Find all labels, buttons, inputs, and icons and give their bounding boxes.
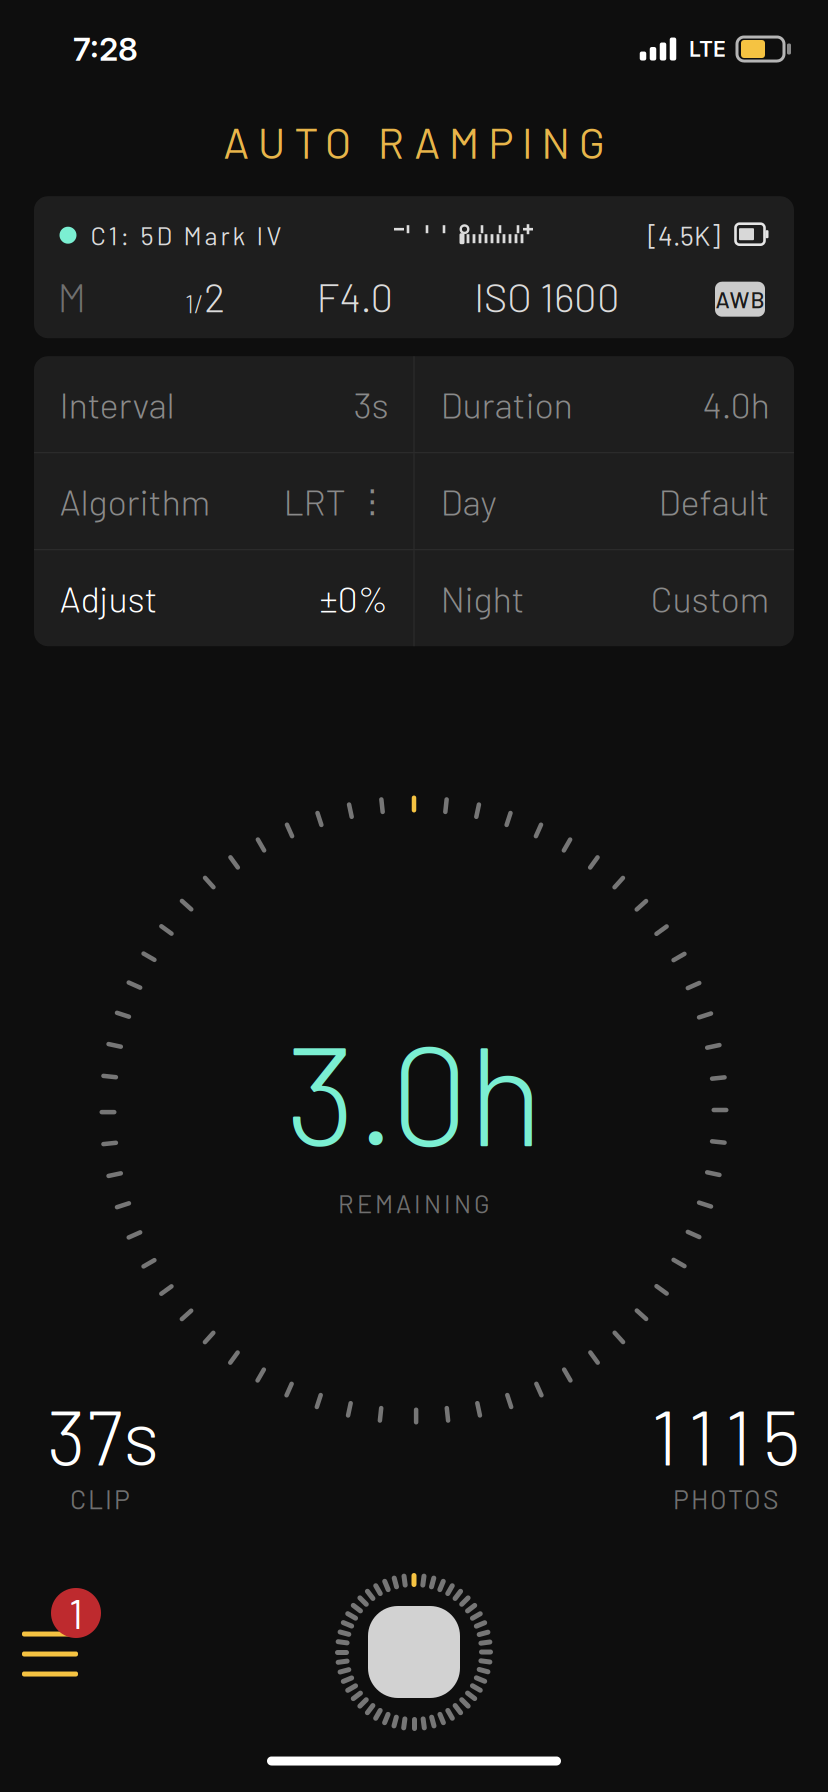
staticText: 1/	[185, 288, 204, 318]
staticText: PHOTOS	[673, 1483, 779, 1515]
staticText: Algorithm	[59, 480, 210, 523]
button[interactable]: Algorithm	[33, 453, 413, 549]
staticText: Day	[440, 480, 496, 523]
staticText: 1	[69, 1589, 83, 1637]
staticText: 2	[204, 272, 225, 320]
button[interactable]: Shutter	[319, 1557, 509, 1747]
staticText: ⋮	[356, 483, 388, 520]
staticText: F4.0	[316, 272, 393, 320]
staticText: Adjust	[59, 577, 157, 620]
staticText: ±0%	[319, 577, 388, 620]
staticText: 37s	[47, 1389, 159, 1481]
staticText: M	[57, 272, 86, 320]
button[interactable]: Day	[414, 453, 794, 549]
staticText: C1: 5D Mark IV	[90, 220, 281, 250]
staticText: 3s	[353, 383, 388, 426]
staticText: CLIP	[70, 1483, 130, 1515]
staticText: LTE	[689, 36, 726, 62]
staticText: Duration	[440, 383, 572, 426]
staticText: AUTO RAMPING	[223, 116, 605, 167]
staticText: [4.5K]	[648, 219, 720, 251]
staticText: Custom	[650, 577, 769, 620]
button[interactable]: Menu	[16, 1580, 136, 1700]
staticText: Default	[658, 480, 769, 523]
staticText: Interval	[59, 383, 174, 426]
staticText: 7:28	[73, 30, 138, 68]
staticText: 3.0h	[285, 1008, 542, 1174]
staticText: REMAINING	[338, 1188, 490, 1218]
staticText: LRT	[283, 480, 345, 523]
staticText: 4.0h	[702, 383, 769, 426]
button[interactable]: Adjust	[33, 550, 413, 646]
button[interactable]: Duration	[414, 356, 794, 452]
staticText: 1115	[651, 1389, 801, 1481]
button[interactable]: Interval	[33, 356, 413, 452]
staticText: ISO 1600	[474, 272, 620, 320]
staticText: AWB	[715, 286, 764, 313]
staticText: Night	[440, 577, 524, 620]
button[interactable]: Night	[414, 550, 794, 646]
